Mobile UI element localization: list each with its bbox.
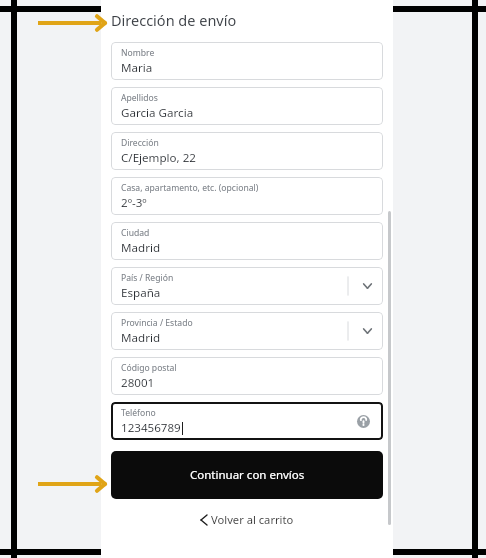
staticText: C/Ejemplo, 22 bbox=[121, 150, 196, 166]
button[interactable]: Nombre bbox=[111, 42, 383, 80]
button[interactable]: Abrir selector Provincia / Estado bbox=[347, 315, 379, 347]
button[interactable]: Casa, apartamento, etc. (opcional) bbox=[111, 177, 383, 215]
staticText: Garcia Garcia bbox=[121, 105, 194, 121]
staticText: España bbox=[121, 285, 161, 301]
button[interactable]: Código postal bbox=[111, 357, 383, 395]
staticText: Teléfono bbox=[121, 407, 156, 419]
button[interactable]: País / Región bbox=[111, 267, 383, 305]
staticText: 28001 bbox=[121, 375, 155, 391]
button[interactable]: Abrir selector País / Región bbox=[347, 270, 379, 302]
staticText: Madrid bbox=[121, 240, 161, 256]
button[interactable]: Apellidos bbox=[111, 87, 383, 125]
staticText: Apellidos bbox=[121, 92, 158, 104]
button[interactable]: Teléfono bbox=[111, 402, 383, 440]
staticText: 2º-3º bbox=[121, 195, 147, 211]
staticText: Maria bbox=[121, 60, 153, 76]
staticText: 123456789 bbox=[121, 420, 181, 436]
staticText: Provincia / Estado bbox=[121, 317, 193, 329]
button[interactable]: Volver al carrito bbox=[111, 512, 383, 527]
staticText: Dirección de envío bbox=[111, 10, 237, 30]
button[interactable]: Continuar con envíos bbox=[111, 451, 383, 499]
staticText: País / Región bbox=[121, 272, 174, 284]
button[interactable]: Ayuda sobre el teléfono bbox=[353, 411, 373, 431]
staticText: Volver al carrito bbox=[211, 512, 294, 527]
staticText: Madrid bbox=[121, 330, 161, 346]
staticText: Nombre bbox=[121, 47, 155, 59]
staticText: Ciudad bbox=[121, 227, 150, 239]
button[interactable]: Provincia / Estado bbox=[111, 312, 383, 350]
staticText: Código postal bbox=[121, 362, 177, 374]
staticText: Casa, apartamento, etc. (opcional) bbox=[121, 182, 259, 194]
staticText: Dirección bbox=[121, 137, 159, 149]
button[interactable]: Dirección bbox=[111, 132, 383, 170]
button[interactable]: Ciudad bbox=[111, 222, 383, 260]
staticText: Continuar con envíos bbox=[190, 467, 305, 483]
